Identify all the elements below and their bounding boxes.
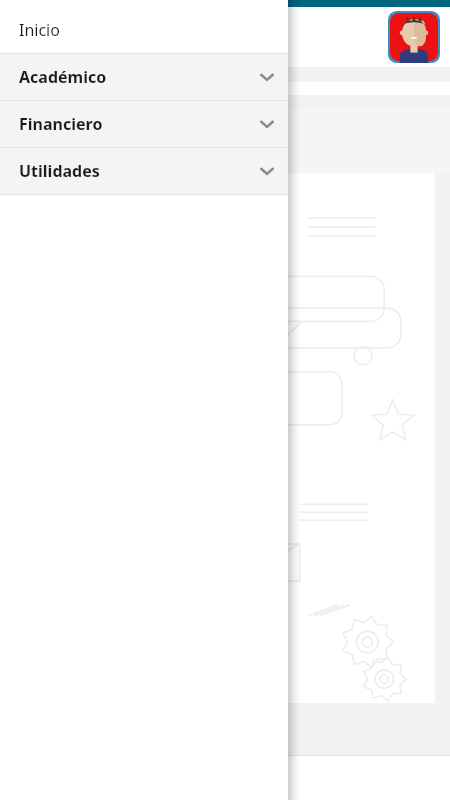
button[interactable]: Perfil de usuario [388,11,440,63]
staticText: Financiero [19,113,258,135]
button[interactable]: Inicio [0,7,288,53]
button[interactable]: Nuevos procesos escolares con el objetiv… [12,173,435,703]
staticText: Inicio [19,19,60,41]
button[interactable]: Académico [0,54,288,100]
button[interactable]: Utilidades [0,148,288,194]
button[interactable]: Financiero [0,101,288,147]
staticText: Académico [19,66,258,88]
staticText: Utilidades [19,160,258,182]
